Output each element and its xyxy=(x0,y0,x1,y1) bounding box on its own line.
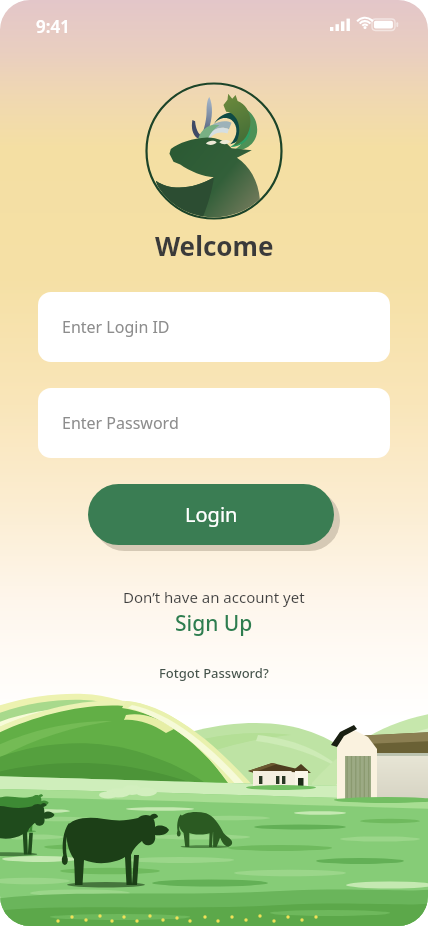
staticText: Sign Up xyxy=(175,609,253,638)
staticText: Fotgot Password? xyxy=(159,664,269,682)
staticText: Welcome xyxy=(155,228,274,263)
staticText: Enter Login ID xyxy=(62,316,170,338)
staticText: 9:41 xyxy=(36,15,70,38)
staticText: Login xyxy=(185,501,238,528)
staticText: Enter Password xyxy=(62,412,179,434)
button[interactable]: Fotgot Password? xyxy=(0,664,428,682)
button[interactable]: Enter Password xyxy=(38,388,390,458)
button[interactable]: Login xyxy=(88,484,334,545)
button[interactable]: Sign Up xyxy=(0,609,428,638)
button[interactable]: Enter Login ID xyxy=(38,292,390,362)
staticText: Don’t have an account yet xyxy=(123,587,305,607)
